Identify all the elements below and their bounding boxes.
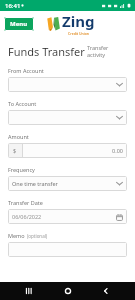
button[interactable]: Back	[96, 282, 116, 300]
button[interactable]	[8, 77, 127, 92]
button[interactable]	[8, 242, 127, 257]
staticText: From Account	[8, 67, 44, 74]
button[interactable]	[8, 110, 127, 125]
staticText: Credit Union	[68, 31, 90, 36]
staticText: Amount	[8, 133, 29, 140]
staticText: $	[13, 147, 17, 154]
button[interactable]: Transfer activity	[85, 42, 127, 60]
staticText: Funds Transfer	[8, 44, 85, 59]
staticText: Frequency	[8, 166, 35, 173]
staticText: Memo	[8, 232, 25, 239]
staticText: To Account	[8, 100, 37, 107]
staticText: Menu	[10, 20, 28, 28]
button[interactable]: Home	[58, 282, 78, 300]
staticText: Zing	[62, 11, 95, 31]
staticText: (optional)	[27, 233, 48, 239]
staticText: 0.00	[112, 147, 123, 154]
staticText: 06/06/2022	[12, 213, 42, 220]
other: Pick date	[115, 213, 123, 221]
staticText: Transfer Date	[8, 199, 43, 206]
button[interactable]: 06/06/2022	[8, 209, 127, 224]
button[interactable]: $	[8, 143, 127, 158]
button[interactable]: One time transfer	[8, 176, 127, 191]
button[interactable]: Recent apps	[19, 282, 39, 300]
staticText: 16:41	[5, 2, 21, 10]
staticText: Transfer activity	[87, 44, 125, 58]
staticText: One time transfer	[12, 180, 58, 187]
button[interactable]: Menu	[4, 17, 34, 31]
